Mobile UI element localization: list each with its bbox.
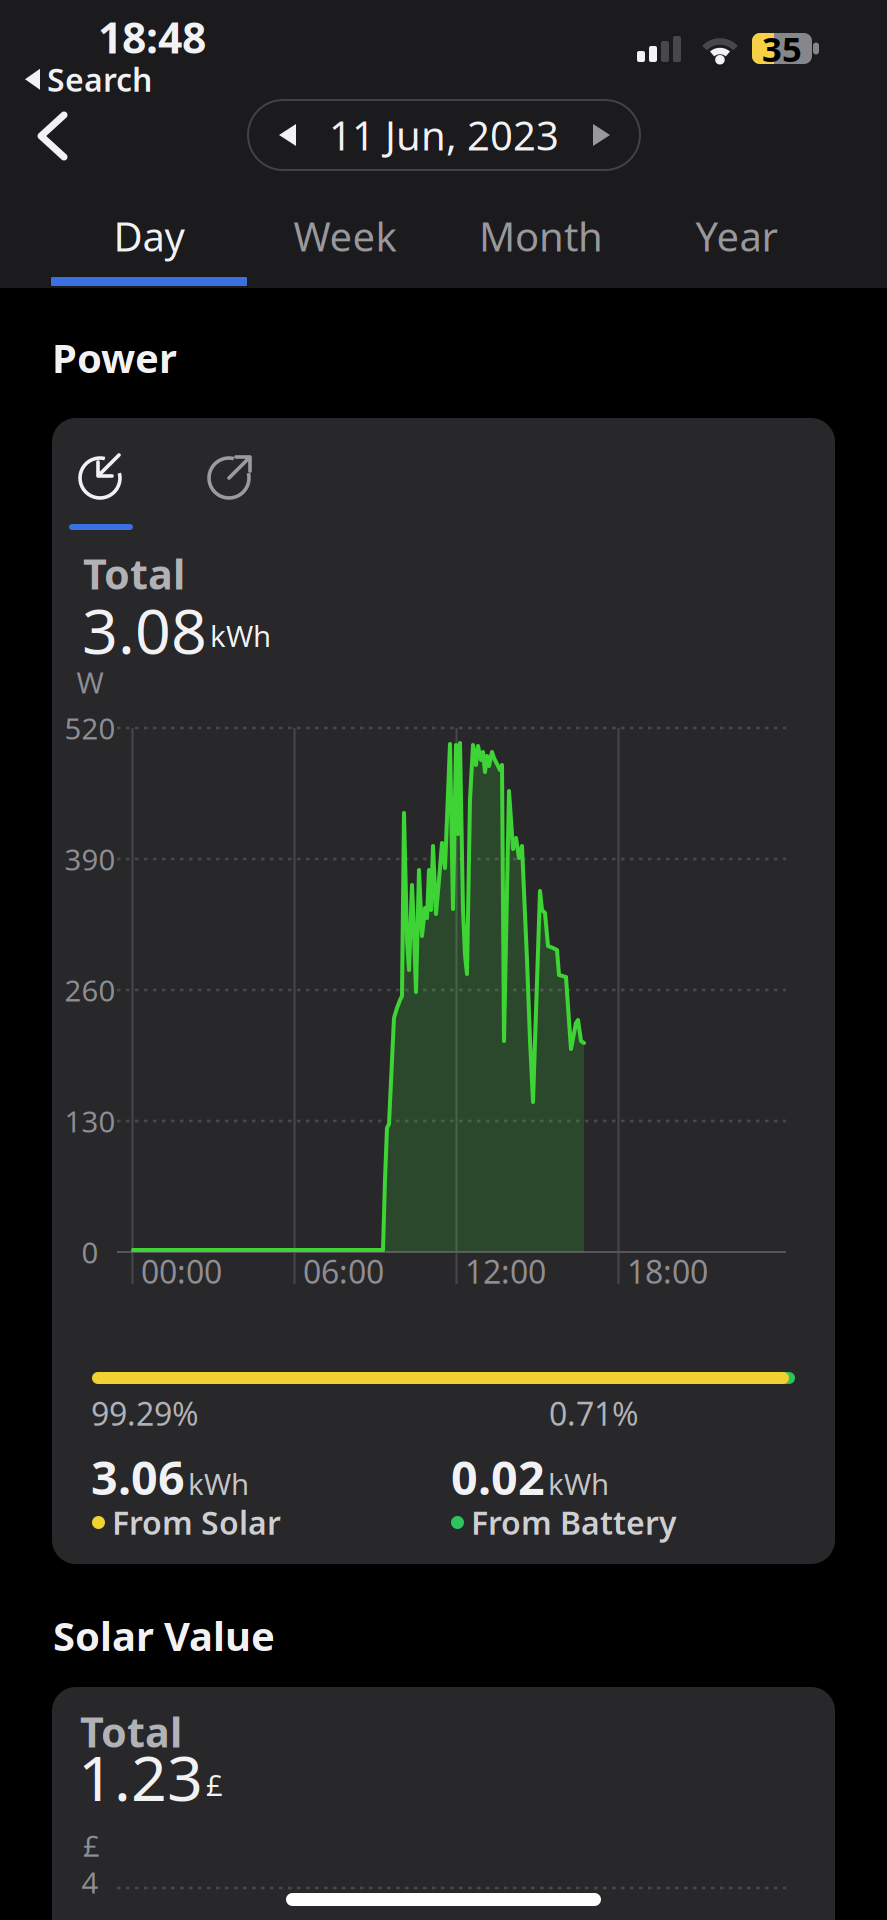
staticText: 99.29% (91, 1392, 199, 1434)
staticText: From Battery (471, 1501, 677, 1543)
staticText: 3.08 (82, 588, 207, 671)
staticText: £ (83, 1826, 100, 1865)
staticText: Week (293, 209, 396, 262)
staticText: kWh (548, 1464, 609, 1503)
staticText: 00:00 (141, 1250, 222, 1292)
staticText: 3.06 (91, 1446, 185, 1508)
staticText: 0.71% (549, 1392, 639, 1434)
staticText: 0.02 (451, 1446, 545, 1508)
staticText: W (76, 662, 103, 701)
staticText: 11 Jun, 2023 (329, 108, 559, 161)
staticText: Day (113, 209, 184, 262)
staticText: 130 (64, 1101, 115, 1140)
staticText: £ (206, 1765, 223, 1804)
staticText: 12:00 (465, 1250, 546, 1292)
staticText: 18:48 (98, 9, 206, 65)
staticText: kWh (188, 1464, 249, 1503)
staticText: 260 (64, 970, 115, 1009)
staticText: Power (52, 331, 177, 384)
button[interactable]: Day (51, 205, 247, 267)
button[interactable]: Month (443, 205, 639, 267)
staticText: Year (695, 209, 778, 262)
button[interactable]: Imported power (79, 453, 125, 499)
staticText: From Solar (112, 1501, 281, 1543)
button[interactable]: Previous day (279, 124, 296, 146)
button[interactable]: Week (247, 205, 443, 267)
staticText: Month (479, 209, 603, 262)
staticText: Total (83, 546, 185, 601)
staticText: Solar Value (53, 1609, 275, 1662)
staticText: 06:00 (303, 1250, 384, 1292)
button[interactable]: Search (25, 58, 152, 100)
button[interactable]: Back (36, 111, 72, 161)
staticText: kWh (210, 616, 271, 655)
button[interactable]: Year (639, 205, 835, 267)
staticText: 4 (81, 1862, 98, 1901)
staticText: 35 (762, 25, 802, 71)
button[interactable]: Exported power (208, 453, 254, 499)
staticText: 1.23 (78, 1735, 203, 1818)
staticText: Search (47, 58, 152, 100)
staticText: 18:00 (627, 1250, 708, 1292)
staticText: 0 (81, 1232, 98, 1271)
button[interactable]: Next day (593, 124, 610, 146)
button[interactable]: 11 Jun, 2023 (248, 100, 640, 170)
staticText: Total (80, 1704, 182, 1759)
staticText: 390 (64, 839, 115, 878)
staticText: 520 (64, 708, 115, 747)
